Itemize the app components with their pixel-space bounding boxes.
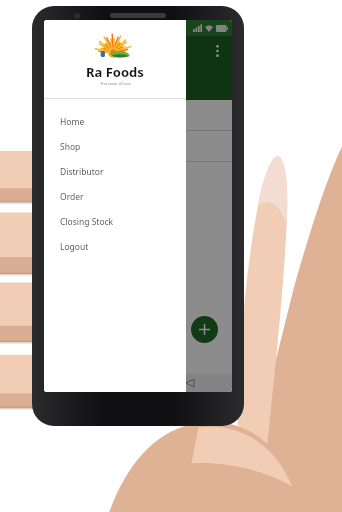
- button[interactable]: Back: [181, 374, 199, 392]
- staticText: Ra Foods: [86, 63, 144, 81]
- button[interactable]: Shop: [44, 134, 186, 159]
- staticText: Closing Stock: [60, 216, 114, 228]
- button[interactable]: Close navigation drawer: [186, 20, 232, 392]
- button[interactable]: Closing Stock: [44, 209, 186, 234]
- button[interactable]: More options: [208, 42, 226, 60]
- staticText: Paid: [52, 109, 71, 121]
- button[interactable]: Home: [44, 109, 186, 134]
- staticText: Distributor: [60, 166, 104, 178]
- staticText: Home: [60, 116, 85, 128]
- staticText: Logout: [60, 241, 89, 253]
- staticText: Shop: [60, 141, 81, 153]
- button[interactable]: Distributor: [44, 159, 186, 184]
- staticText: Type: [52, 140, 73, 152]
- button[interactable]: Order: [44, 184, 186, 209]
- button[interactable]: Logout: [44, 234, 186, 259]
- staticText: Amount: [52, 76, 90, 90]
- staticText: Order: [60, 191, 84, 203]
- staticText: The taste of love: [100, 81, 131, 86]
- button[interactable]: Add: [191, 316, 218, 343]
